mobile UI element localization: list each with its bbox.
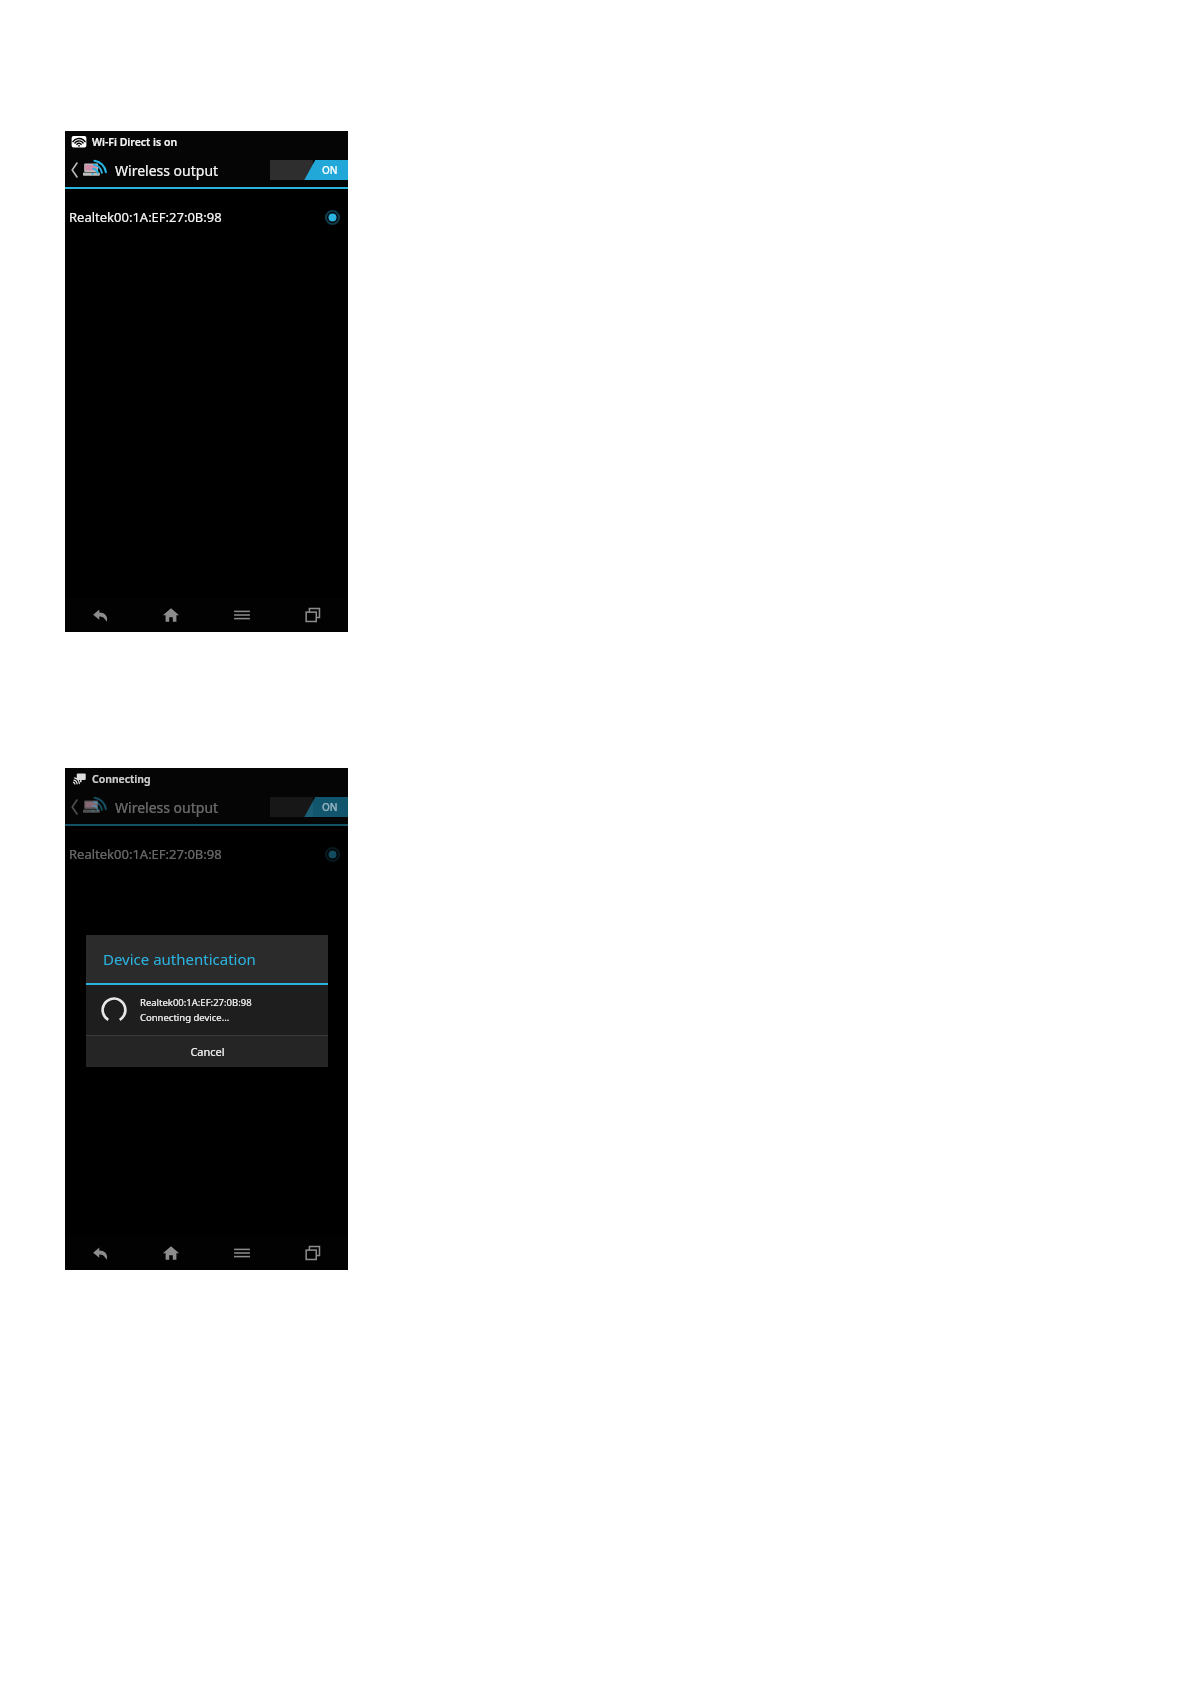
button[interactable]: Back [65, 153, 348, 187]
button[interactable]: Realtek00:1A:EF:27:0B:98 [65, 189, 348, 244]
staticText: Connecting [92, 772, 151, 786]
button[interactable]: Home [135, 598, 206, 632]
button[interactable]: Recent apps [277, 1236, 348, 1270]
button[interactable]: Back [69, 157, 81, 183]
button[interactable]: Recent apps [277, 598, 348, 632]
staticText: Cancel [190, 1044, 225, 1059]
button[interactable]: Wireless output on [270, 797, 348, 817]
button[interactable]: Menu [206, 598, 277, 632]
button[interactable]: Menu [206, 1236, 277, 1270]
button[interactable]: Realtek00:1A:EF:27:0B:98 [65, 826, 348, 881]
button[interactable]: Selected device [320, 205, 344, 229]
staticText: Wireless output [115, 161, 219, 180]
staticText: ON [322, 800, 338, 814]
button[interactable]: Back [65, 790, 348, 824]
staticText: Realtek00:1A:EF:27:0B:98 [140, 996, 252, 1009]
button[interactable]: Wireless output on [270, 160, 348, 180]
button[interactable]: Back [69, 794, 81, 820]
staticText: Realtek00:1A:EF:27:0B:98 [69, 208, 222, 226]
button[interactable]: Home [135, 1236, 206, 1270]
button[interactable]: Back [65, 598, 135, 632]
staticText: Device authentication [103, 949, 256, 969]
staticText: Wi-Fi Direct is on [92, 135, 178, 149]
staticText: Connecting device... [140, 1011, 230, 1024]
staticText: ON [322, 163, 338, 177]
staticText: Wireless output [115, 798, 219, 817]
button[interactable]: Cancel [86, 1036, 328, 1067]
button[interactable]: Back [65, 1236, 135, 1270]
staticText: Realtek00:1A:EF:27:0B:98 [69, 845, 222, 863]
button[interactable]: Selected device [320, 842, 344, 866]
